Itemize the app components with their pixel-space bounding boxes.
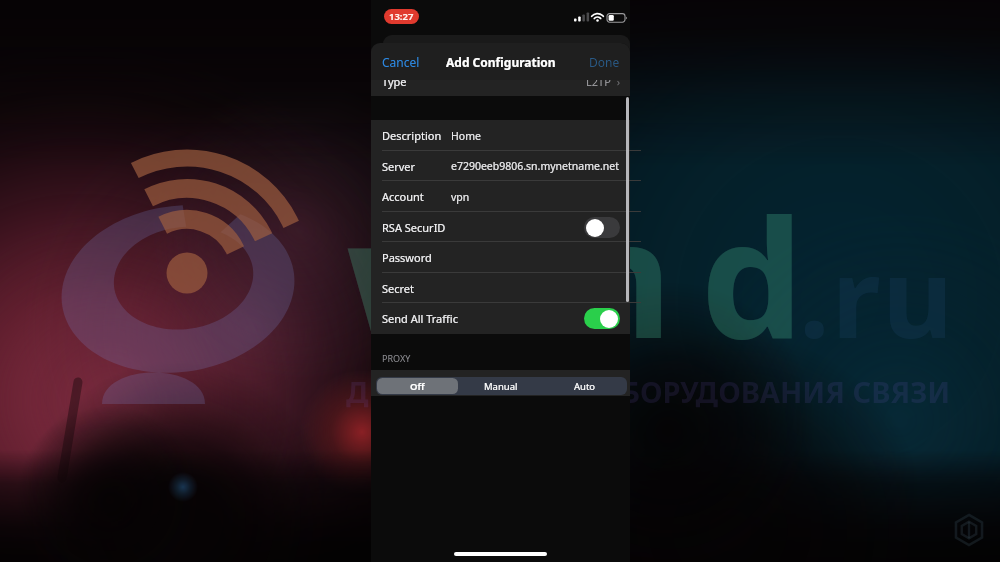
staticText: Server	[382, 159, 416, 174]
staticText: Cancel	[382, 54, 420, 70]
staticText: Done	[589, 54, 620, 70]
button[interactable]: Type	[371, 66, 630, 96]
staticText: ›	[611, 74, 621, 89]
button[interactable]: Off	[377, 378, 458, 394]
staticText: vpn	[451, 190, 470, 204]
staticText: Auto	[574, 380, 596, 393]
button[interactable]: Server	[371, 151, 630, 181]
staticText: Add Configuration	[446, 54, 556, 70]
staticText: Off	[410, 380, 425, 393]
button[interactable]: Send All Traffic	[371, 303, 630, 334]
staticText: Manual	[484, 380, 518, 393]
button[interactable]: Account	[371, 181, 630, 212]
button[interactable]: Cancel	[371, 48, 431, 76]
staticText: Secret	[382, 281, 415, 296]
button[interactable]: Manual	[460, 378, 542, 394]
staticText: Home	[451, 129, 481, 143]
staticText: Description	[382, 128, 442, 143]
button[interactable]: RSA SecurID	[584, 217, 620, 238]
button[interactable]: Password	[371, 242, 630, 273]
staticText: Type	[382, 74, 407, 89]
staticText: PROXY	[382, 352, 411, 364]
staticText: RSA SecurID	[382, 220, 446, 235]
button[interactable]: Done	[579, 48, 630, 76]
button[interactable]: Auto	[544, 378, 626, 394]
staticText: Account	[382, 189, 424, 204]
button[interactable]: Description	[371, 120, 630, 151]
staticText: Password	[382, 250, 432, 265]
staticText: wmd	[346, 164, 832, 386]
staticText: .ru	[799, 221, 956, 369]
staticText: 13:27	[389, 10, 414, 23]
staticText: ДИСТРИБЬЮТОР ОБОРУДОВАНИЯ СВЯЗИ	[346, 372, 951, 411]
button[interactable]: RSA SecurID	[371, 212, 630, 242]
staticText: e7290eeb9806.sn.mynetname.net	[451, 159, 619, 173]
button[interactable]: Send All Traffic	[584, 308, 620, 329]
staticText: Send All Traffic	[382, 311, 458, 326]
button[interactable]: Secret	[371, 273, 630, 303]
staticText: L2TP	[586, 74, 611, 89]
